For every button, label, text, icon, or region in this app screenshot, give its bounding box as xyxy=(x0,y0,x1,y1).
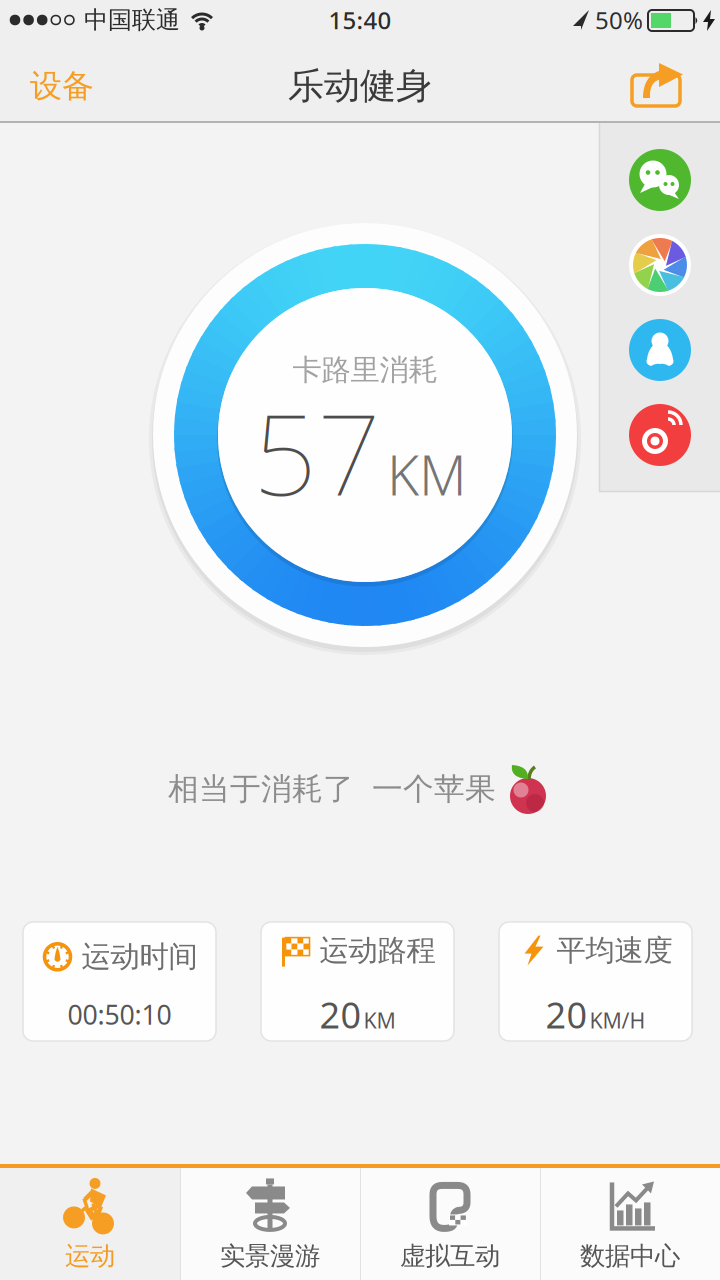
button[interactable]: 虚拟互动 xyxy=(360,1168,540,1280)
staticText: KM xyxy=(387,438,467,510)
staticText: 50% xyxy=(595,4,643,36)
staticText: 相当于消耗了 一个苹果 xyxy=(168,770,496,808)
staticText: 实景漫游 xyxy=(220,1240,320,1271)
staticText: 00:50:10 xyxy=(67,997,171,1032)
button[interactable]: 实景漫游 xyxy=(180,1168,360,1280)
button[interactable]: 运动 xyxy=(0,1168,180,1280)
staticText: 数据中心 xyxy=(580,1240,680,1271)
staticText: 运动时间 xyxy=(81,939,197,975)
button[interactable]: 设备 xyxy=(17,61,107,111)
staticText: 20 xyxy=(319,991,361,1038)
staticText: 虚拟互动 xyxy=(400,1240,500,1271)
button[interactable]: 数据中心 xyxy=(540,1168,720,1280)
button[interactable]: QQ xyxy=(629,319,691,381)
staticText: 运动 xyxy=(65,1240,115,1271)
staticText: 平均速度 xyxy=(556,933,672,969)
staticText: 57 xyxy=(253,378,381,526)
staticText: 设备 xyxy=(30,66,94,106)
staticText: 运动路程 xyxy=(319,933,435,969)
staticText: 乐动健身 xyxy=(288,64,432,108)
staticText: 15:40 xyxy=(328,4,391,36)
staticText: 卡路里消耗 xyxy=(292,352,437,388)
staticText: KM/H xyxy=(589,1006,645,1034)
button[interactable]: 微信 xyxy=(629,149,691,211)
button[interactable]: 微博 xyxy=(629,404,691,466)
staticText: 中国联通 xyxy=(84,5,180,35)
staticText: KM xyxy=(363,1006,395,1034)
staticText: 20 xyxy=(545,991,587,1038)
button[interactable]: 分享 xyxy=(632,58,700,108)
button[interactable]: 朋友圈 xyxy=(629,234,691,296)
